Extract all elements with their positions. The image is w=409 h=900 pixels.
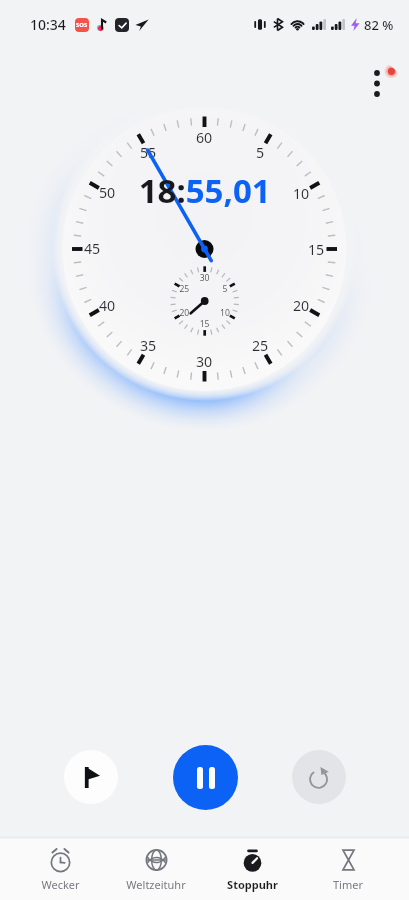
button[interactable]: Lap [64, 750, 118, 804]
button[interactable]: Pause [173, 745, 238, 810]
button[interactable]: Reset [292, 750, 346, 804]
staticText: Timer [333, 877, 363, 892]
staticText: 82 % [364, 16, 394, 34]
button[interactable]: More options [355, 62, 401, 108]
staticText: Weltzeituhr [126, 877, 186, 892]
staticText: Wecker [41, 877, 80, 892]
button[interactable]: Weltzeituhr [108, 839, 204, 900]
staticText: SOS [76, 21, 88, 29]
button[interactable]: Stoppuhr [204, 839, 300, 900]
staticText: 10:34 [30, 15, 66, 34]
button[interactable]: Timer [300, 839, 396, 900]
staticText: Stoppuhr [227, 877, 278, 892]
button[interactable]: Wecker [13, 839, 108, 900]
